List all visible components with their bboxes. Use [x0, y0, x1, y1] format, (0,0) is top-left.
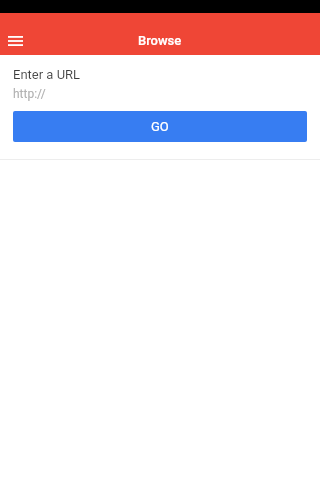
staticText: http://	[13, 87, 46, 101]
staticText: Browse	[138, 33, 182, 48]
staticText: GO	[151, 119, 169, 134]
button[interactable]: GO	[13, 111, 307, 142]
button[interactable]: http://	[0, 87, 320, 101]
button[interactable]: Open navigation menu	[2, 28, 28, 54]
staticText: Enter a URL	[13, 67, 81, 82]
